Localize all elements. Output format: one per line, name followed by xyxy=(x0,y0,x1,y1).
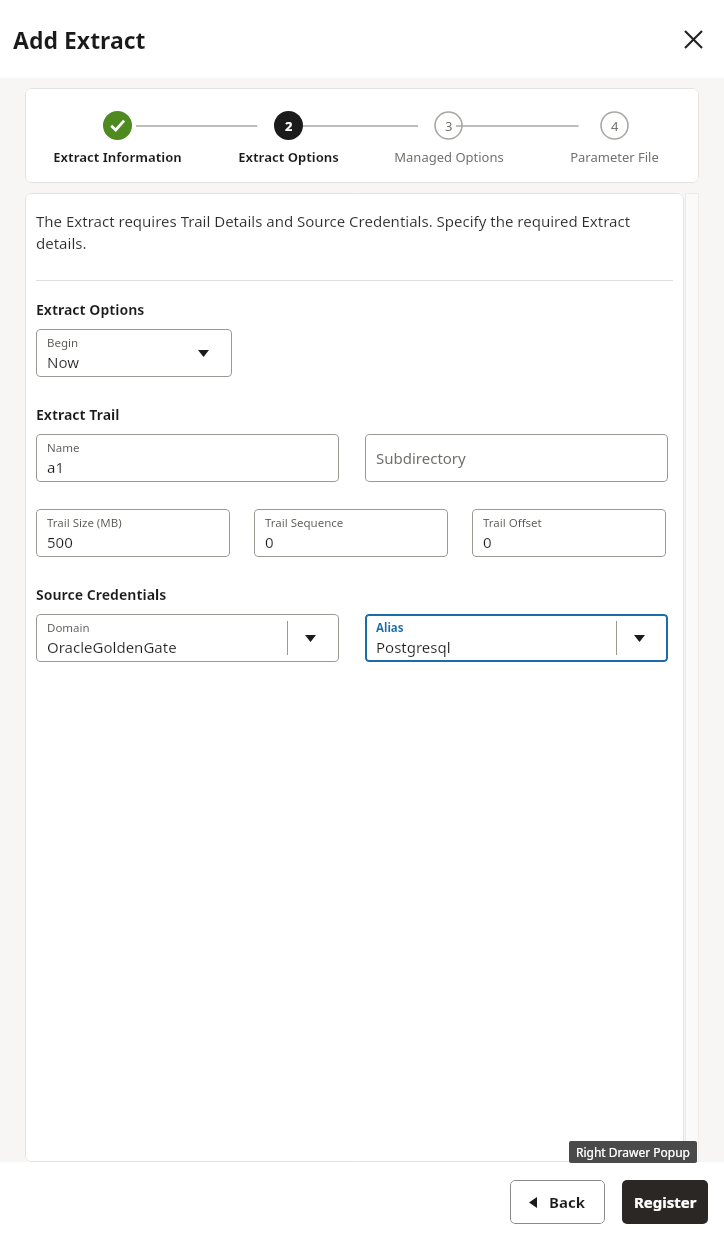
staticText: Right Drawer Popup xyxy=(576,1144,690,1160)
other: Open dropdown xyxy=(628,627,650,649)
staticText: 0 xyxy=(483,532,492,552)
button[interactable]: 4 xyxy=(529,88,699,183)
staticText: 3 xyxy=(445,117,453,135)
staticText: Name xyxy=(47,440,80,456)
staticText: Extract Information xyxy=(53,148,182,166)
staticText: Back xyxy=(549,1192,586,1212)
staticText: Add Extract xyxy=(13,24,146,55)
staticText: 4 xyxy=(611,117,619,135)
staticText: Trail Offset xyxy=(483,515,542,531)
staticText: 500 xyxy=(47,532,73,552)
button[interactable]: Name xyxy=(36,434,339,482)
staticText: The Extract requires Trail Details and S… xyxy=(36,211,661,254)
staticText: Trail Size (MB) xyxy=(47,515,122,531)
button[interactable]: Register xyxy=(622,1180,708,1224)
button[interactable]: Close xyxy=(674,20,712,58)
other: Open dropdown xyxy=(299,627,321,649)
button[interactable]: Trail Offset xyxy=(472,509,666,557)
button[interactable]: Trail Sequence xyxy=(254,509,448,557)
button[interactable]: Extract Information xyxy=(25,88,209,183)
button[interactable]: Domain xyxy=(36,614,339,662)
staticText: Source Credentials xyxy=(36,585,167,604)
button[interactable]: 3 xyxy=(368,88,529,183)
staticText: 2 xyxy=(285,117,293,135)
staticText: Extract Trail xyxy=(36,405,120,424)
button[interactable]: Trail Size (MB) xyxy=(36,509,230,557)
staticText: Extract Options xyxy=(36,300,145,319)
button[interactable]: Back xyxy=(510,1180,605,1224)
staticText: Subdirectory xyxy=(376,448,466,468)
staticText: Trail Sequence xyxy=(265,515,344,531)
button[interactable]: 2 xyxy=(209,88,368,183)
staticText: Begin xyxy=(47,335,79,351)
staticText: Alias xyxy=(376,620,404,636)
button[interactable]: Alias xyxy=(365,614,668,662)
staticText: Register xyxy=(634,1192,697,1212)
staticText: Now xyxy=(47,352,79,372)
staticText: Parameter File xyxy=(570,148,659,166)
button[interactable]: Begin xyxy=(36,329,232,377)
staticText: Postgresql xyxy=(376,637,451,657)
staticText: OracleGoldenGate xyxy=(47,637,177,657)
staticText: a1 xyxy=(47,457,64,477)
staticText: Managed Options xyxy=(394,148,504,166)
staticText: Extract Options xyxy=(238,148,339,166)
staticText: Domain xyxy=(47,620,90,636)
button[interactable]: Subdirectory xyxy=(365,434,668,482)
other: Open dropdown xyxy=(192,342,214,364)
staticText: 0 xyxy=(265,532,274,552)
